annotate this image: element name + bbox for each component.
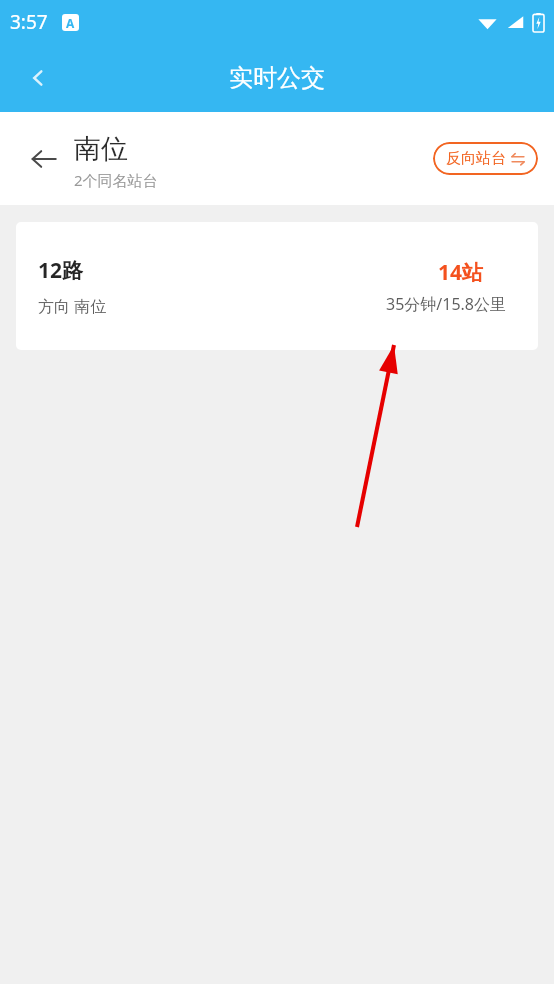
staticText: 实时公交	[229, 63, 325, 93]
staticText: 反向站台	[446, 149, 506, 168]
button[interactable]: Back	[14, 54, 62, 102]
staticText: 2个同名站台	[74, 170, 158, 190]
button[interactable]: 12路	[16, 222, 538, 350]
staticText: 3:57	[10, 9, 48, 35]
staticText: 方向 南位	[38, 295, 107, 317]
staticText: 35分钟/15.8公里	[386, 293, 516, 315]
staticText: 12路	[38, 256, 84, 285]
button[interactable]: Back	[22, 137, 66, 181]
staticText: 南位	[74, 132, 128, 166]
staticText: A	[66, 15, 75, 31]
button[interactable]: 反向站台	[433, 142, 538, 175]
staticText: 14站	[438, 258, 484, 287]
